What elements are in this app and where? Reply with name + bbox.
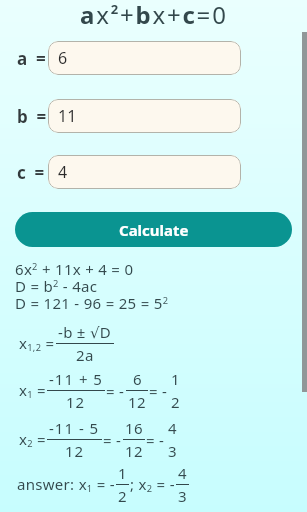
staticText: -11 - 5	[49, 418, 100, 438]
staticText: x1 =	[19, 380, 46, 401]
staticText: a =	[17, 47, 48, 70]
staticText: 3	[178, 486, 187, 506]
staticText: 4	[178, 463, 187, 483]
staticText: 12	[66, 392, 86, 412]
staticText: = -	[106, 381, 125, 401]
staticText: ax2+bx+c=0	[80, 0, 228, 29]
staticText: 4	[58, 161, 68, 183]
staticText: 1	[171, 369, 180, 389]
staticText: Calculate	[119, 220, 189, 240]
staticText: 16	[125, 418, 143, 438]
staticText: 3	[168, 441, 177, 461]
staticText: = -	[146, 430, 165, 450]
staticText: ; x2 = -	[130, 474, 175, 495]
staticText: 6	[133, 369, 142, 389]
staticText: = -	[103, 430, 122, 450]
staticText: 6	[58, 47, 68, 69]
staticText: D = 121 - 96 = 25 = 52	[15, 293, 169, 313]
staticText: 12	[128, 392, 146, 412]
button[interactable]: 6	[48, 41, 241, 75]
staticText: = -	[149, 381, 168, 401]
staticText: b =	[17, 105, 49, 128]
staticText: x2 =	[19, 429, 46, 450]
staticText: 1	[118, 463, 127, 483]
staticText: 2	[171, 392, 180, 412]
staticText: 11	[58, 105, 77, 127]
staticText: x1,2 =	[19, 333, 55, 354]
button[interactable]: 11	[48, 99, 241, 133]
staticText: answer: x1 = -	[17, 474, 115, 495]
button[interactable]: 4	[48, 155, 241, 189]
staticText: -11 + 5	[49, 369, 103, 389]
staticText: 6x2 + 11x + 4 = 0	[15, 259, 134, 279]
staticText: 12	[65, 441, 85, 461]
staticText: -b ± √D	[58, 322, 112, 342]
staticText: 2a	[76, 345, 94, 365]
staticText: 2	[118, 486, 127, 506]
button[interactable]: Calculate	[15, 212, 292, 247]
staticText: 12	[125, 441, 143, 461]
staticText: D = b2 - 4ac	[15, 276, 98, 296]
staticText: c =	[17, 161, 47, 184]
staticText: 4	[168, 418, 177, 438]
